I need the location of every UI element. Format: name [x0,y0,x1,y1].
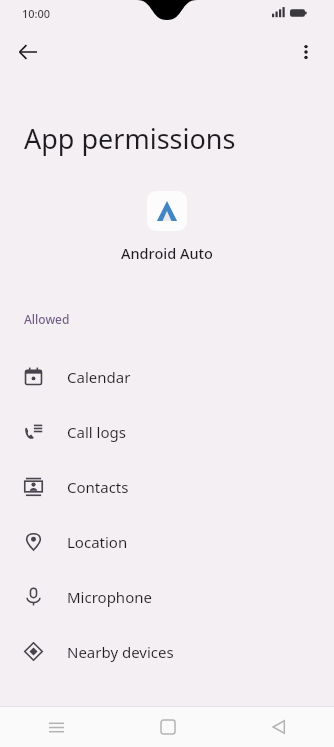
staticText: Contacts [67,477,129,497]
button[interactable]: Nearby devices [0,624,334,679]
button[interactable]: Back [10,34,46,70]
button[interactable]: Back [223,707,334,747]
staticText: Nearby devices [67,642,174,662]
staticText: Allowed [24,311,70,327]
button[interactable]: Calendar [0,349,334,404]
staticText: Location [67,532,128,552]
button[interactable]: Call logs [0,404,334,459]
button[interactable]: Location [0,514,334,569]
button[interactable]: Recents [0,707,112,747]
staticText: 10:00 [22,6,51,21]
staticText: Microphone [67,587,152,607]
button[interactable]: More options [288,34,324,70]
staticText: App permissions [24,120,236,157]
button[interactable]: Home [112,707,223,747]
staticText: Call logs [67,422,126,442]
button[interactable]: Microphone [0,569,334,624]
staticText: Calendar [67,367,131,387]
staticText: Android Auto [121,243,213,263]
button[interactable]: Contacts [0,459,334,514]
